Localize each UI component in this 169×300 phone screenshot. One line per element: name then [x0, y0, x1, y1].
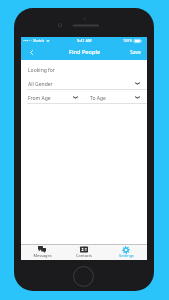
- staticText: Find People: [69, 48, 101, 56]
- staticText: 100%: [123, 38, 133, 43]
- button[interactable]: Back: [21, 44, 41, 60]
- button[interactable]: To Age: [84, 89, 147, 103]
- staticText: Contacts: [76, 253, 92, 258]
- staticText: From Age: [28, 95, 51, 102]
- staticText: Looking for: [28, 67, 55, 74]
- staticText: All Gender: [28, 81, 53, 88]
- staticText: Messages: [33, 253, 52, 258]
- staticText: To Age: [90, 95, 106, 102]
- button[interactable]: Messages: [21, 245, 63, 260]
- staticText: 9:41 AM: [77, 38, 92, 43]
- button[interactable]: Settings: [105, 245, 147, 260]
- button[interactable]: Contacts: [63, 245, 105, 260]
- staticText: Settings: [119, 253, 134, 258]
- button[interactable]: All Gender: [21, 77, 147, 90]
- staticText: Sketch: [33, 38, 45, 43]
- staticText: Save: [130, 49, 141, 56]
- button[interactable]: Save: [124, 44, 147, 60]
- button[interactable]: From Age: [21, 89, 84, 103]
